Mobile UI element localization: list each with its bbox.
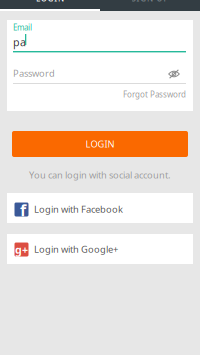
button[interactable]: g+ bbox=[7, 234, 193, 264]
staticText: Login with Facebook bbox=[34, 203, 123, 215]
button[interactable]: SIGN UP bbox=[100, 0, 200, 4]
button[interactable]: LOGIN bbox=[12, 131, 188, 157]
staticText: SIGN UP bbox=[132, 0, 168, 4]
staticText: You can login with social account. bbox=[29, 169, 171, 181]
staticText: f bbox=[20, 199, 26, 221]
button[interactable]: LOGIN bbox=[0, 0, 100, 4]
button[interactable]: f bbox=[7, 193, 193, 223]
button[interactable]: Forgot Password bbox=[13, 90, 186, 99]
staticText: LOGIN bbox=[85, 138, 114, 150]
staticText: Forgot Password bbox=[123, 89, 186, 100]
staticText: Email bbox=[13, 22, 32, 33]
staticText: pa bbox=[13, 35, 26, 49]
staticText: g+ bbox=[15, 242, 28, 257]
button[interactable]: Show password bbox=[168, 69, 180, 79]
staticText: Login with Google+ bbox=[34, 243, 118, 255]
staticText: Password bbox=[13, 67, 55, 79]
staticText: LOGIN bbox=[36, 0, 64, 4]
